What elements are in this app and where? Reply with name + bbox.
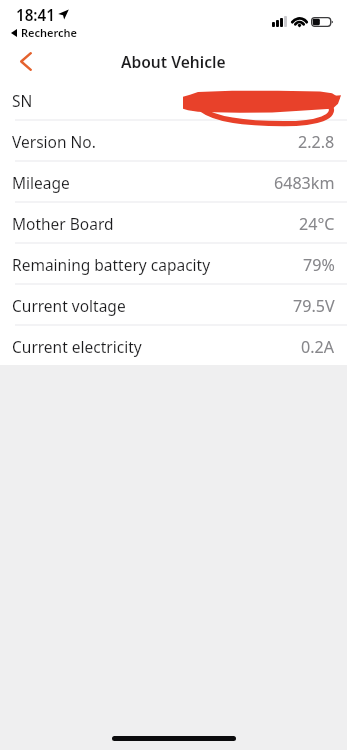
button[interactable]: Back <box>0 44 46 80</box>
staticText: 2.2.8 <box>298 131 335 153</box>
button[interactable]: Mother Board <box>0 203 347 244</box>
staticText: Current electricity <box>12 336 142 357</box>
staticText: 79% <box>303 254 335 276</box>
staticText: Version No. <box>12 131 96 152</box>
staticText: About Vehicle <box>121 51 226 72</box>
staticText: Current voltage <box>12 295 126 316</box>
button[interactable]: SN <box>0 80 347 121</box>
staticText: Mileage <box>12 172 70 193</box>
staticText: 18:41 <box>16 5 55 26</box>
staticText: 0.2A <box>301 336 335 358</box>
button[interactable]: Current electricity <box>0 326 347 367</box>
staticText: Remaining battery capacity <box>12 254 211 275</box>
staticText: 24°C <box>299 213 335 235</box>
staticText: 79.5V <box>293 295 335 317</box>
staticText: SN <box>12 90 33 111</box>
staticText: 6483km <box>274 172 335 194</box>
staticText: Mother Board <box>12 213 114 234</box>
button[interactable]: Current voltage <box>0 285 347 326</box>
button[interactable]: Mileage <box>0 162 347 203</box>
staticText: Recherche <box>21 25 78 40</box>
button[interactable]: Remaining battery capacity <box>0 244 347 285</box>
button[interactable]: Version No. <box>0 121 347 162</box>
